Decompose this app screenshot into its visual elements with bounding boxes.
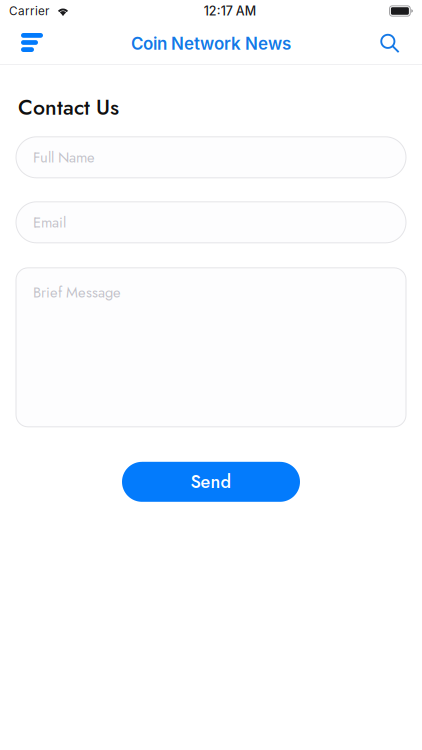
staticText: Brief Message — [33, 282, 121, 303]
staticText: Coin Network News — [131, 33, 291, 54]
staticText: Send — [190, 469, 231, 495]
staticText: Full Name — [33, 147, 95, 168]
staticText: Contact Us — [18, 92, 119, 123]
staticText: 12:17 AM — [204, 3, 256, 19]
button[interactable]: Send — [122, 462, 300, 502]
staticText: Email — [33, 212, 66, 233]
button[interactable]: Search — [368, 22, 412, 65]
staticText: Carrier — [9, 4, 49, 18]
button[interactable]: Menu — [10, 22, 54, 65]
